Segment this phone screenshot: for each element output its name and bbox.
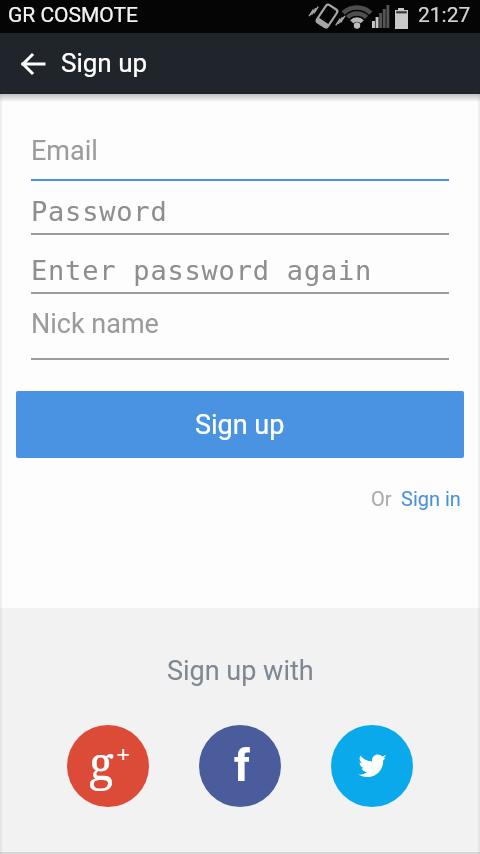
button[interactable]: Sign in <box>401 487 461 510</box>
staticText: Sign up with <box>167 655 314 687</box>
staticText: Sign up <box>195 409 285 441</box>
staticText: g <box>89 731 114 794</box>
staticText: Sign in <box>401 487 461 510</box>
staticText: Email <box>31 135 98 167</box>
staticText: Password <box>31 196 168 227</box>
staticText: Enter password again <box>31 255 373 286</box>
button[interactable] <box>331 725 413 807</box>
button[interactable]: g <box>67 725 149 807</box>
staticText: Sign up <box>61 48 148 78</box>
staticText: Nick name <box>31 308 159 340</box>
staticText: Or <box>371 487 392 510</box>
button[interactable] <box>12 42 56 86</box>
staticText: 21:27 <box>418 3 471 28</box>
staticText: f <box>234 740 250 792</box>
button[interactable]: f <box>199 725 281 807</box>
staticText: GR COSMOTE <box>8 3 139 28</box>
staticText: + <box>116 736 131 771</box>
button[interactable]: Sign up <box>16 391 464 458</box>
